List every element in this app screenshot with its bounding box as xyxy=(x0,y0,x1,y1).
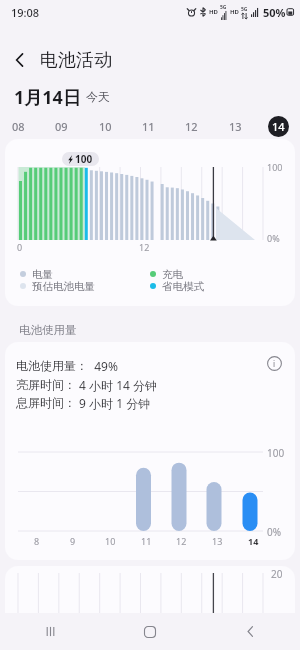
button[interactable]: Back xyxy=(0,40,40,80)
staticText: 08 xyxy=(12,119,25,134)
staticText: 13 xyxy=(229,119,242,134)
staticText: 省电模式 xyxy=(162,280,204,293)
staticText: 电池使用量 xyxy=(19,323,77,337)
staticText: 19:08 xyxy=(11,5,40,20)
staticText: 电池活动 xyxy=(40,49,112,72)
staticText: 100 xyxy=(267,446,285,460)
button[interactable]: 12 xyxy=(181,116,202,137)
staticText: 12 xyxy=(185,119,198,134)
staticText: 今天 xyxy=(86,89,110,104)
button[interactable]: Info xyxy=(263,352,285,374)
staticText: 5G xyxy=(241,6,248,13)
staticText: 13 xyxy=(212,535,223,547)
button[interactable]: 09 xyxy=(51,116,72,137)
staticText: 12 xyxy=(139,241,150,253)
button[interactable]: 13 xyxy=(225,116,246,137)
button[interactable]: 14 xyxy=(268,116,289,137)
staticText: HD xyxy=(209,8,218,16)
staticText: 4 小时 14 分钟 xyxy=(76,377,158,393)
staticText: 14 xyxy=(248,535,259,547)
button[interactable]: Recents xyxy=(27,613,73,650)
staticText: 1月14日 xyxy=(14,85,81,107)
button[interactable]: 08 xyxy=(8,116,29,137)
staticText: 息屏时间： xyxy=(16,395,76,410)
staticText: 11 xyxy=(141,535,152,547)
button[interactable]: Home xyxy=(127,613,173,650)
staticText: 14 xyxy=(272,119,285,134)
staticText: 10 xyxy=(99,119,112,134)
staticText: 9 小时 1 分钟 xyxy=(76,395,151,411)
staticText: 50% xyxy=(263,5,286,20)
staticText: 12 xyxy=(176,535,187,547)
staticText: 充电 xyxy=(162,268,183,281)
staticText: 0 xyxy=(17,241,23,253)
staticText: 电池使用量： xyxy=(16,358,88,373)
staticText: 100 xyxy=(75,152,93,166)
staticText: HD xyxy=(230,8,239,16)
staticText: 0% xyxy=(267,232,280,244)
staticText: 11 xyxy=(142,119,155,134)
staticText: 预估电池电量 xyxy=(32,280,95,293)
staticText: 09 xyxy=(55,119,68,134)
staticText: 电量 xyxy=(32,268,53,281)
staticText: 10 xyxy=(105,535,116,547)
staticText: 49% xyxy=(88,358,118,374)
staticText: i xyxy=(273,358,276,369)
button[interactable]: 10 xyxy=(95,116,116,137)
staticText: 5G xyxy=(220,4,227,11)
button[interactable]: 11 xyxy=(138,116,159,137)
staticText: 亮屏时间： xyxy=(16,377,76,392)
button[interactable]: Back xyxy=(227,613,273,650)
staticText: 9 xyxy=(70,535,76,547)
staticText: 8 xyxy=(34,535,40,547)
staticText: 0% xyxy=(267,525,282,539)
staticText: 100 xyxy=(267,161,283,173)
staticText: 20 xyxy=(271,567,283,581)
